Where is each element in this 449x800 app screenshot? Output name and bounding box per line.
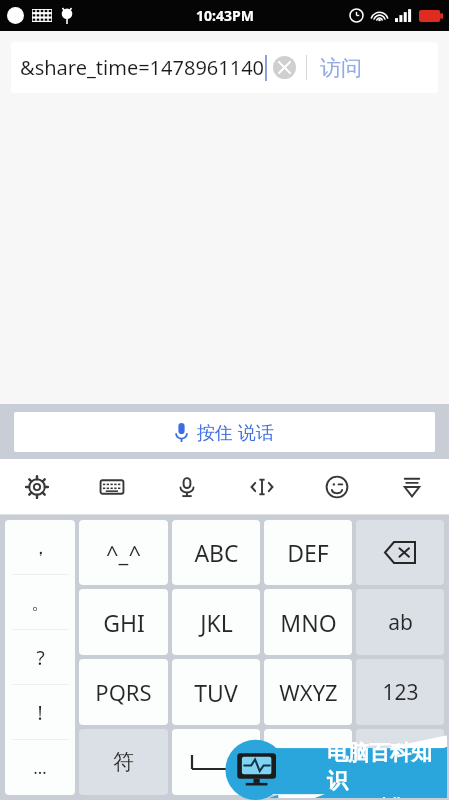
staticText: 按住 说话	[197, 420, 274, 445]
button[interactable]: PQRS	[79, 659, 168, 725]
button[interactable]: Delete	[356, 520, 444, 585]
button[interactable]: Voice input	[149, 459, 224, 514]
button[interactable]: MNO	[264, 589, 352, 655]
button[interactable]: TUV	[172, 659, 260, 725]
staticText: 10:43PM	[196, 6, 254, 25]
staticText: 。	[31, 591, 50, 615]
button[interactable]: ，	[5, 520, 75, 575]
staticText: …	[33, 756, 47, 779]
button[interactable]: Space	[172, 729, 260, 795]
staticText: ^_^	[106, 538, 141, 568]
button[interactable]: ，	[264, 729, 352, 795]
button[interactable]: Enter	[356, 729, 444, 795]
staticText: 电脑百科知识	[327, 740, 447, 794]
button[interactable]: ^_^	[79, 520, 168, 585]
staticText: JKL	[200, 607, 233, 638]
staticText: TUV	[194, 677, 238, 708]
button[interactable]: Hide keyboard	[374, 459, 449, 514]
staticText: ，	[31, 536, 50, 560]
button[interactable]: 按住 说话	[14, 412, 435, 452]
button[interactable]: ab	[356, 589, 444, 655]
staticText: 访问	[320, 55, 362, 81]
button[interactable]: ?	[5, 630, 75, 685]
button[interactable]: GHI	[79, 589, 168, 655]
button[interactable]: 访问	[307, 51, 375, 85]
staticText: WXYZ	[279, 677, 338, 707]
button[interactable]: Emoji	[299, 459, 374, 514]
staticText: DEF	[287, 537, 329, 568]
button[interactable]: JKL	[172, 589, 260, 655]
button[interactable]: 123	[356, 659, 444, 725]
staticText: ab	[388, 608, 413, 637]
button[interactable]: …	[5, 740, 75, 795]
staticText: ABC	[194, 537, 239, 568]
staticText: www.pc-daily.com	[327, 794, 436, 798]
staticText: 123	[382, 678, 419, 707]
staticText: ?	[36, 645, 45, 671]
staticText: &share_time=1478961140	[20, 54, 265, 81]
staticText: 符	[113, 749, 134, 775]
button[interactable]: DEF	[264, 520, 352, 585]
button[interactable]: !	[5, 685, 75, 740]
button[interactable]: Move cursor	[224, 459, 299, 514]
staticText: PQRS	[95, 677, 152, 707]
staticText: GHI	[103, 607, 145, 638]
staticText: !	[37, 700, 43, 726]
button[interactable]: Keyboard	[74, 459, 149, 514]
button[interactable]: 。	[5, 575, 75, 630]
button[interactable]: 符	[79, 729, 168, 795]
staticText: MNO	[280, 607, 337, 638]
button[interactable]: Settings	[0, 459, 74, 514]
button[interactable]: ABC	[172, 520, 260, 585]
button[interactable]: Clear	[273, 56, 296, 79]
button[interactable]: &share_time=1478961140	[11, 42, 438, 93]
button[interactable]: WXYZ	[264, 659, 352, 725]
